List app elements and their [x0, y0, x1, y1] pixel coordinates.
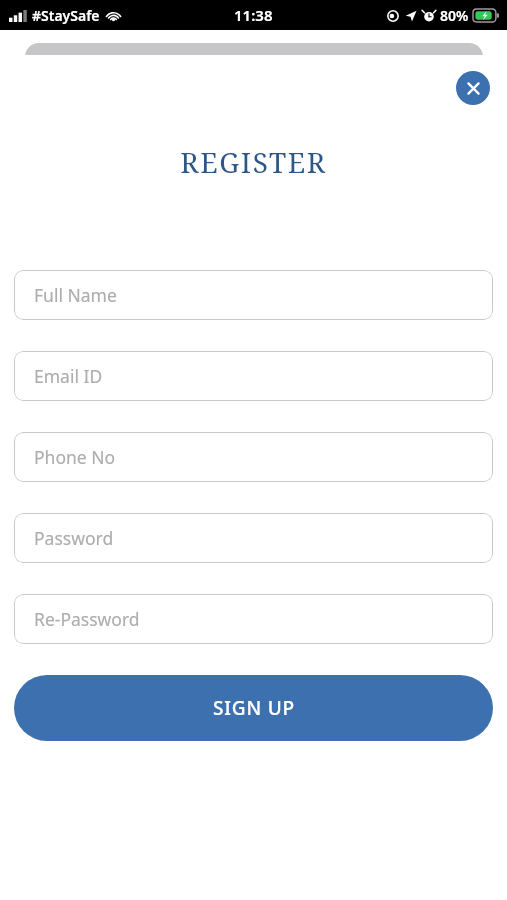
button[interactable]: Re-Password	[14, 594, 493, 644]
staticText: Phone No	[34, 445, 116, 469]
button[interactable]: Full Name	[14, 270, 493, 320]
button[interactable]: Email ID	[14, 351, 493, 401]
staticText: Re-Password	[34, 607, 140, 631]
staticText: Password	[34, 526, 114, 550]
button[interactable]: Password	[14, 513, 493, 563]
staticText: #StaySafe	[32, 6, 100, 25]
staticText: Full Name	[34, 283, 117, 307]
staticText: 80%	[440, 6, 469, 25]
staticText: Email ID	[34, 364, 103, 388]
button[interactable]: SIGN UP	[14, 675, 493, 741]
staticText: REGISTER	[180, 143, 327, 181]
button[interactable]: Close	[456, 71, 490, 105]
button[interactable]: Phone No	[14, 432, 493, 482]
staticText: 11:38	[234, 5, 273, 25]
staticText: SIGN UP	[213, 695, 295, 721]
